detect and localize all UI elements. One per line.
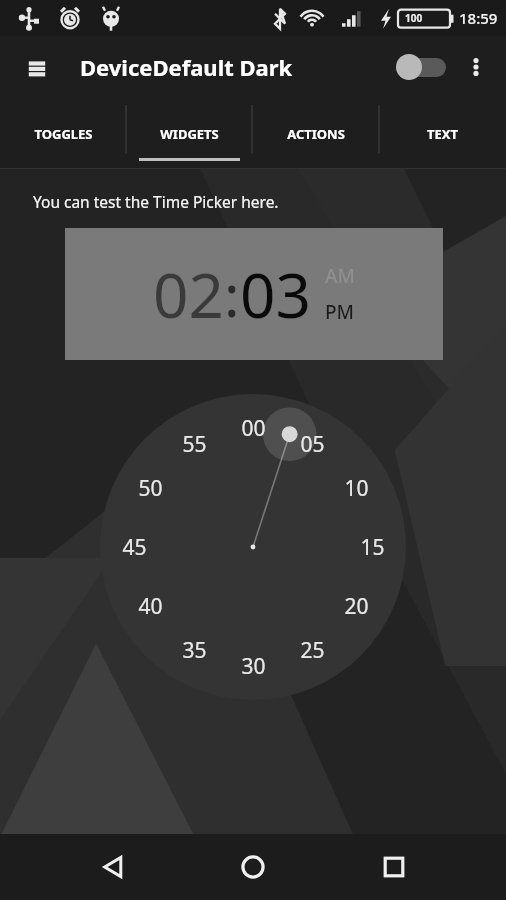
staticText: 10 [344, 474, 369, 503]
button[interactable]: Back [85, 839, 141, 895]
staticText: PM [325, 299, 355, 325]
staticText: 40 [138, 592, 163, 621]
staticText: DeviceDefault Dark [80, 52, 293, 82]
staticText: 55 [182, 430, 207, 459]
staticText: : [224, 255, 240, 334]
staticText: 30 [241, 652, 266, 681]
button[interactable]: ACTIONS [252, 98, 379, 169]
staticText: 20 [344, 592, 369, 621]
staticText: WIDGETS [160, 125, 219, 143]
staticText: 18:59 [459, 8, 498, 28]
staticText: 03 [240, 252, 311, 336]
button[interactable]: TEXT [379, 98, 506, 169]
staticText: 00 [241, 414, 266, 443]
button[interactable]: WIDGETS [126, 98, 252, 169]
button[interactable]: Recent apps [366, 839, 422, 895]
button[interactable]: More options [456, 47, 496, 87]
staticText: 25 [300, 636, 325, 665]
staticText: 50 [138, 474, 163, 503]
staticText: You can test the Time Picker here. [33, 191, 279, 212]
staticText: 02 [153, 252, 224, 336]
staticText: 100 [405, 11, 423, 25]
staticText: ACTIONS [287, 125, 345, 143]
button[interactable]: TOGGLES [0, 98, 126, 169]
staticText: 45 [122, 533, 147, 562]
staticText: 05 [300, 430, 325, 459]
button[interactable]: Minute selector dial [100, 394, 406, 700]
staticText: AM [325, 263, 355, 289]
button[interactable]: Open navigation menu [18, 48, 56, 86]
staticText: 35 [182, 636, 207, 665]
button[interactable]: 02 [65, 228, 443, 360]
button[interactable]: Home [225, 839, 281, 895]
staticText: TEXT [427, 125, 458, 143]
staticText: TOGGLES [34, 125, 93, 143]
staticText: 15 [360, 533, 385, 562]
button[interactable]: Toggle switch [396, 54, 448, 80]
